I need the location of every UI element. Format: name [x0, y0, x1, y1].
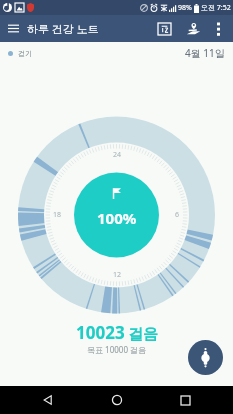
staticText: 98% [178, 3, 192, 13]
staticText: 걷기 [18, 49, 32, 58]
staticText: 4월 11일 [185, 46, 225, 60]
staticText: 24 [113, 150, 122, 160]
button[interactable]: Home [97, 386, 137, 414]
staticText: 12 [113, 270, 122, 280]
staticText: 걸음 [128, 325, 158, 344]
button[interactable]: Calendar [148, 15, 180, 42]
staticText: 6 [175, 210, 180, 220]
button[interactable]: Quick actions [188, 340, 223, 375]
staticText: 오전 7:52 [201, 3, 231, 13]
button[interactable]: More options [206, 15, 230, 42]
staticText: 100% [97, 208, 137, 228]
staticText: 10023 [76, 321, 125, 344]
button[interactable]: Menu [0, 15, 27, 42]
button[interactable]: Recent apps [165, 386, 205, 414]
staticText: 하루 건강 노트 [27, 21, 99, 36]
staticText: 목표 10000 걸음 [87, 344, 147, 355]
staticText: 18 [53, 210, 62, 220]
button[interactable]: Route map [180, 15, 206, 42]
button[interactable]: Back [28, 386, 68, 414]
